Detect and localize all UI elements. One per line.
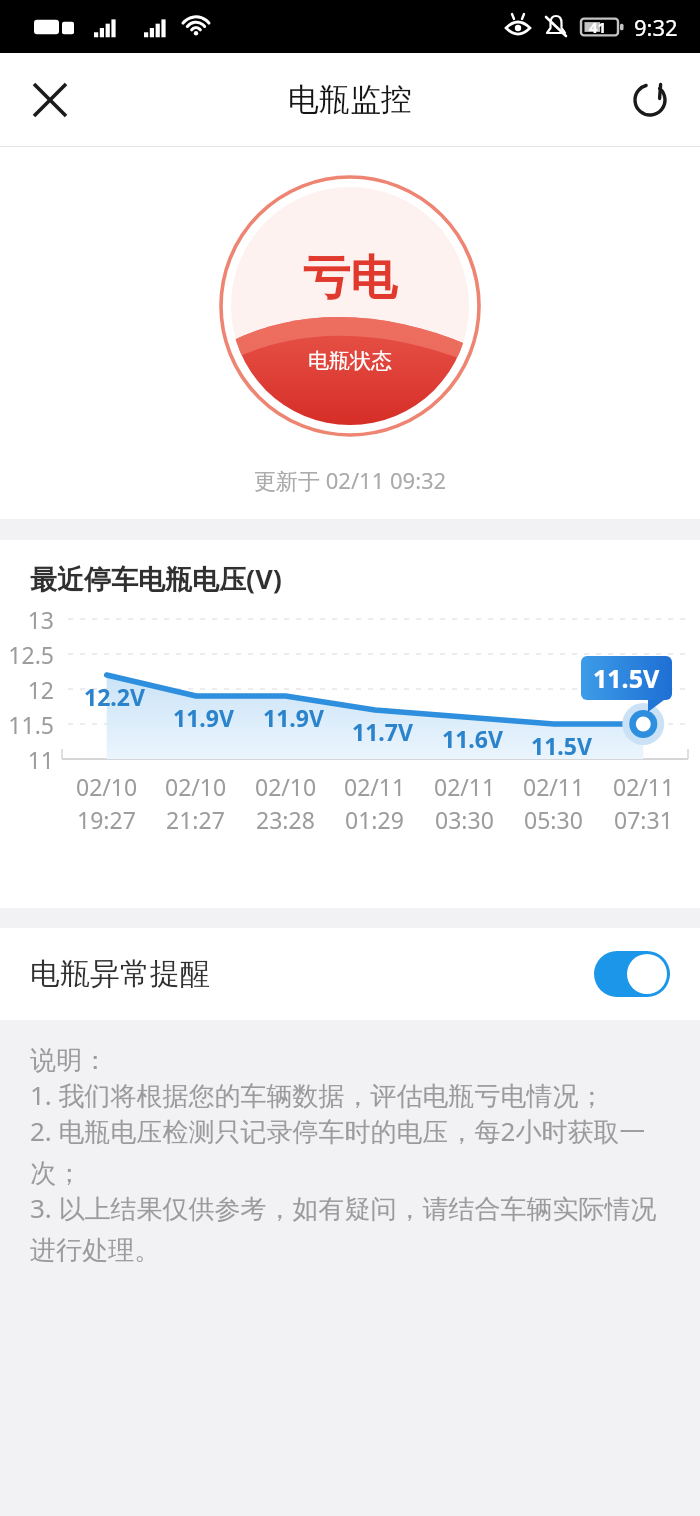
staticText: 19:27 <box>77 804 136 835</box>
staticText: 01:29 <box>345 804 404 835</box>
button[interactable]: 电瓶异常提醒 <box>0 928 700 1020</box>
staticText: 02/10 <box>165 771 227 802</box>
staticText: 02/10 <box>76 771 138 802</box>
staticText: 02/11 <box>613 771 675 802</box>
staticText: 1. 我们将根据您的车辆数据，评估电瓶亏电情况； <box>30 1077 605 1113</box>
staticText: 02/10 <box>255 771 317 802</box>
staticText: 2. 电瓶电压检测只记录停车时的电压，每2小时获取一次； <box>30 1113 676 1190</box>
staticText: 11.9V <box>249 702 338 733</box>
staticText: 11.7V <box>338 716 427 747</box>
staticText: 02/11 <box>523 771 585 802</box>
staticText: 电瓶异常提醒 <box>30 955 210 993</box>
staticText: 13 <box>2 604 54 635</box>
staticText: 更新于 02/11 09:32 <box>254 465 447 495</box>
button[interactable]: Refresh <box>618 68 682 132</box>
staticText: 12 <box>2 674 54 705</box>
staticText: 9:32 <box>634 12 678 42</box>
staticText: 3. 以上结果仅供参考，如有疑问，请结合车辆实际情况进行处理。 <box>30 1190 676 1267</box>
staticText: 11.5V <box>593 661 660 695</box>
staticText: 12.5 <box>2 639 54 670</box>
staticText: 03:30 <box>435 804 494 835</box>
staticText: 05:30 <box>524 804 583 835</box>
staticText: 23:28 <box>256 804 315 835</box>
staticText: 11.9V <box>159 702 248 733</box>
staticText: 02/11 <box>434 771 496 802</box>
staticText: 12.2V <box>70 681 159 712</box>
staticText: 07:31 <box>614 804 673 835</box>
staticText: 11 <box>2 744 54 775</box>
staticText: 11.5 <box>2 709 54 740</box>
staticText: 21:27 <box>166 804 225 835</box>
button[interactable]: Close <box>18 68 82 132</box>
staticText: 02/11 <box>344 771 406 802</box>
staticText: 11.6V <box>428 723 517 754</box>
staticText: 电瓶监控 <box>288 80 412 119</box>
staticText: 说明： <box>30 1044 108 1077</box>
staticText: 亏电 <box>303 249 397 308</box>
button[interactable]: Battery abnormal alert, on <box>594 951 670 997</box>
staticText: 电瓶状态 <box>308 348 392 374</box>
staticText: 最近停车电瓶电压(V) <box>30 560 282 597</box>
staticText: 11.5V <box>517 730 606 761</box>
staticText: 41 <box>589 17 607 37</box>
